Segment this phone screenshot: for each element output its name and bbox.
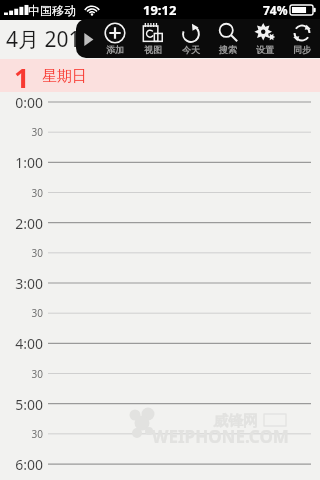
staticText: 星期日	[42, 67, 87, 86]
button[interactable]: 同步	[283, 19, 320, 58]
staticText: 1:00	[0, 153, 43, 171]
staticText: 设置	[256, 44, 274, 55]
staticText: 同步	[293, 44, 311, 55]
staticText: 30	[0, 427, 43, 441]
staticText: 30	[0, 367, 43, 381]
staticText: 6:00	[0, 455, 43, 473]
button[interactable]: 设置	[246, 19, 283, 58]
button[interactable]: 1	[0, 59, 320, 92]
staticText: 视图	[144, 44, 162, 55]
button[interactable]: 今天	[172, 19, 209, 58]
staticText: 19:12	[143, 1, 177, 19]
staticText: 添加	[106, 44, 124, 55]
staticText: 1	[14, 59, 30, 92]
staticText: 威锋网	[213, 412, 258, 431]
staticText: 今天	[182, 44, 200, 55]
staticText: 30	[0, 186, 43, 200]
button[interactable]: Expand toolbar	[78, 24, 98, 54]
button[interactable]: 搜索	[209, 19, 246, 58]
staticText: 4:00	[0, 334, 43, 352]
staticText: 搜索	[219, 44, 237, 55]
staticText: 30	[0, 246, 43, 260]
button[interactable]: 添加	[96, 19, 134, 58]
staticText: 30	[0, 306, 43, 320]
staticText: 2:00	[0, 214, 43, 232]
staticText: 30	[0, 125, 43, 139]
staticText: 4月 2012	[6, 25, 93, 54]
staticText: 0:00	[0, 93, 43, 111]
button[interactable]: 视图	[134, 19, 172, 58]
staticText: 5:00	[0, 395, 43, 413]
staticText: 3:00	[0, 274, 43, 292]
staticText: 中国移动	[28, 3, 76, 18]
staticText: 74%	[263, 2, 288, 18]
staticText: WEIPHONE.COM	[152, 425, 289, 448]
